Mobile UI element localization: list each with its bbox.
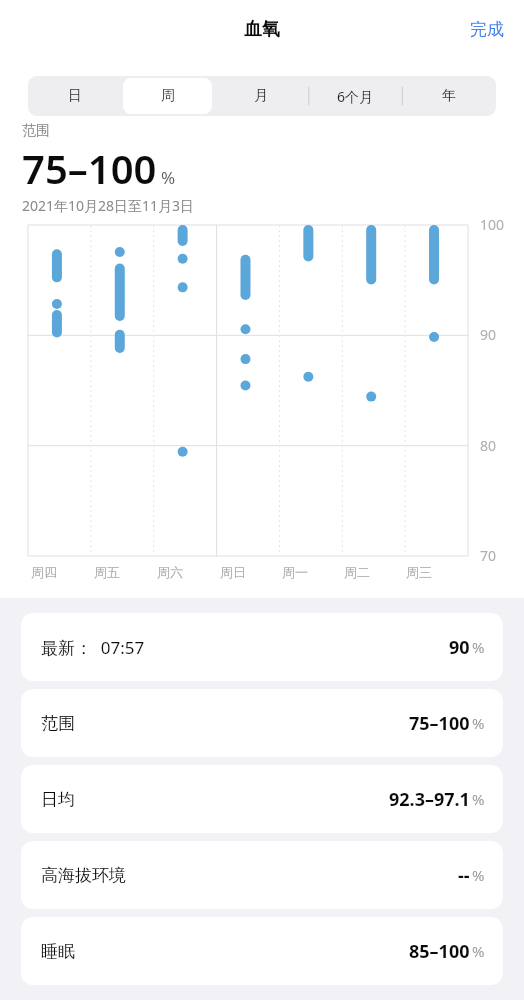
staticText: 睡眠 — [41, 941, 75, 962]
button[interactable]: 高海拔环境 — [21, 841, 503, 909]
staticText: 75–100 — [22, 141, 157, 195]
button[interactable]: 月 — [216, 78, 306, 114]
staticText: 100 — [480, 215, 505, 234]
staticText: 周三 — [406, 564, 432, 580]
staticText: 周六 — [157, 564, 183, 580]
staticText: 周四 — [31, 564, 57, 580]
staticText: % — [472, 789, 485, 809]
staticText: 6个月 — [337, 87, 374, 106]
staticText: 周一 — [282, 564, 308, 580]
staticText: 最新： 07:57 — [41, 636, 145, 659]
staticText: 日均 — [41, 789, 75, 810]
staticText: 年 — [442, 87, 456, 105]
staticText: 75–100 — [409, 711, 470, 736]
button[interactable]: 睡眠 — [21, 917, 503, 985]
staticText: 日 — [68, 87, 82, 105]
button[interactable]: 6个月 — [310, 78, 400, 114]
staticText: % — [472, 941, 485, 961]
staticText: 2021年10月28日至11月3日 — [22, 196, 195, 215]
staticText: % — [161, 166, 176, 189]
staticText: 80 — [480, 436, 497, 455]
button[interactable]: 完成 — [450, 9, 524, 50]
staticText: 范围 — [22, 122, 50, 140]
staticText: 高海拔环境 — [41, 865, 126, 886]
staticText: 90 — [480, 325, 497, 344]
button[interactable]: 日均 — [21, 765, 503, 833]
staticText: 月 — [254, 87, 268, 105]
staticText: % — [472, 713, 485, 733]
button[interactable]: 年 — [404, 78, 494, 114]
staticText: 血氧 — [244, 18, 280, 41]
staticText: % — [472, 637, 485, 657]
staticText: 范围 — [41, 713, 75, 734]
staticText: 周 — [161, 87, 175, 105]
staticText: 70 — [480, 546, 497, 565]
staticText: % — [472, 865, 485, 885]
staticText: 85–100 — [409, 939, 470, 964]
button[interactable]: 范围 — [21, 689, 503, 757]
button[interactable]: 最新： 07:57 — [21, 613, 503, 681]
staticText: 周五 — [94, 564, 120, 580]
staticText: 90 — [449, 635, 470, 660]
staticText: 周日 — [220, 564, 246, 580]
staticText: 完成 — [470, 19, 504, 40]
staticText: 92.3–97.1 — [389, 787, 470, 812]
button[interactable]: 周 — [123, 78, 212, 114]
staticText: 周二 — [344, 564, 370, 580]
button[interactable]: 日 — [30, 78, 119, 114]
staticText: -- — [458, 863, 470, 888]
